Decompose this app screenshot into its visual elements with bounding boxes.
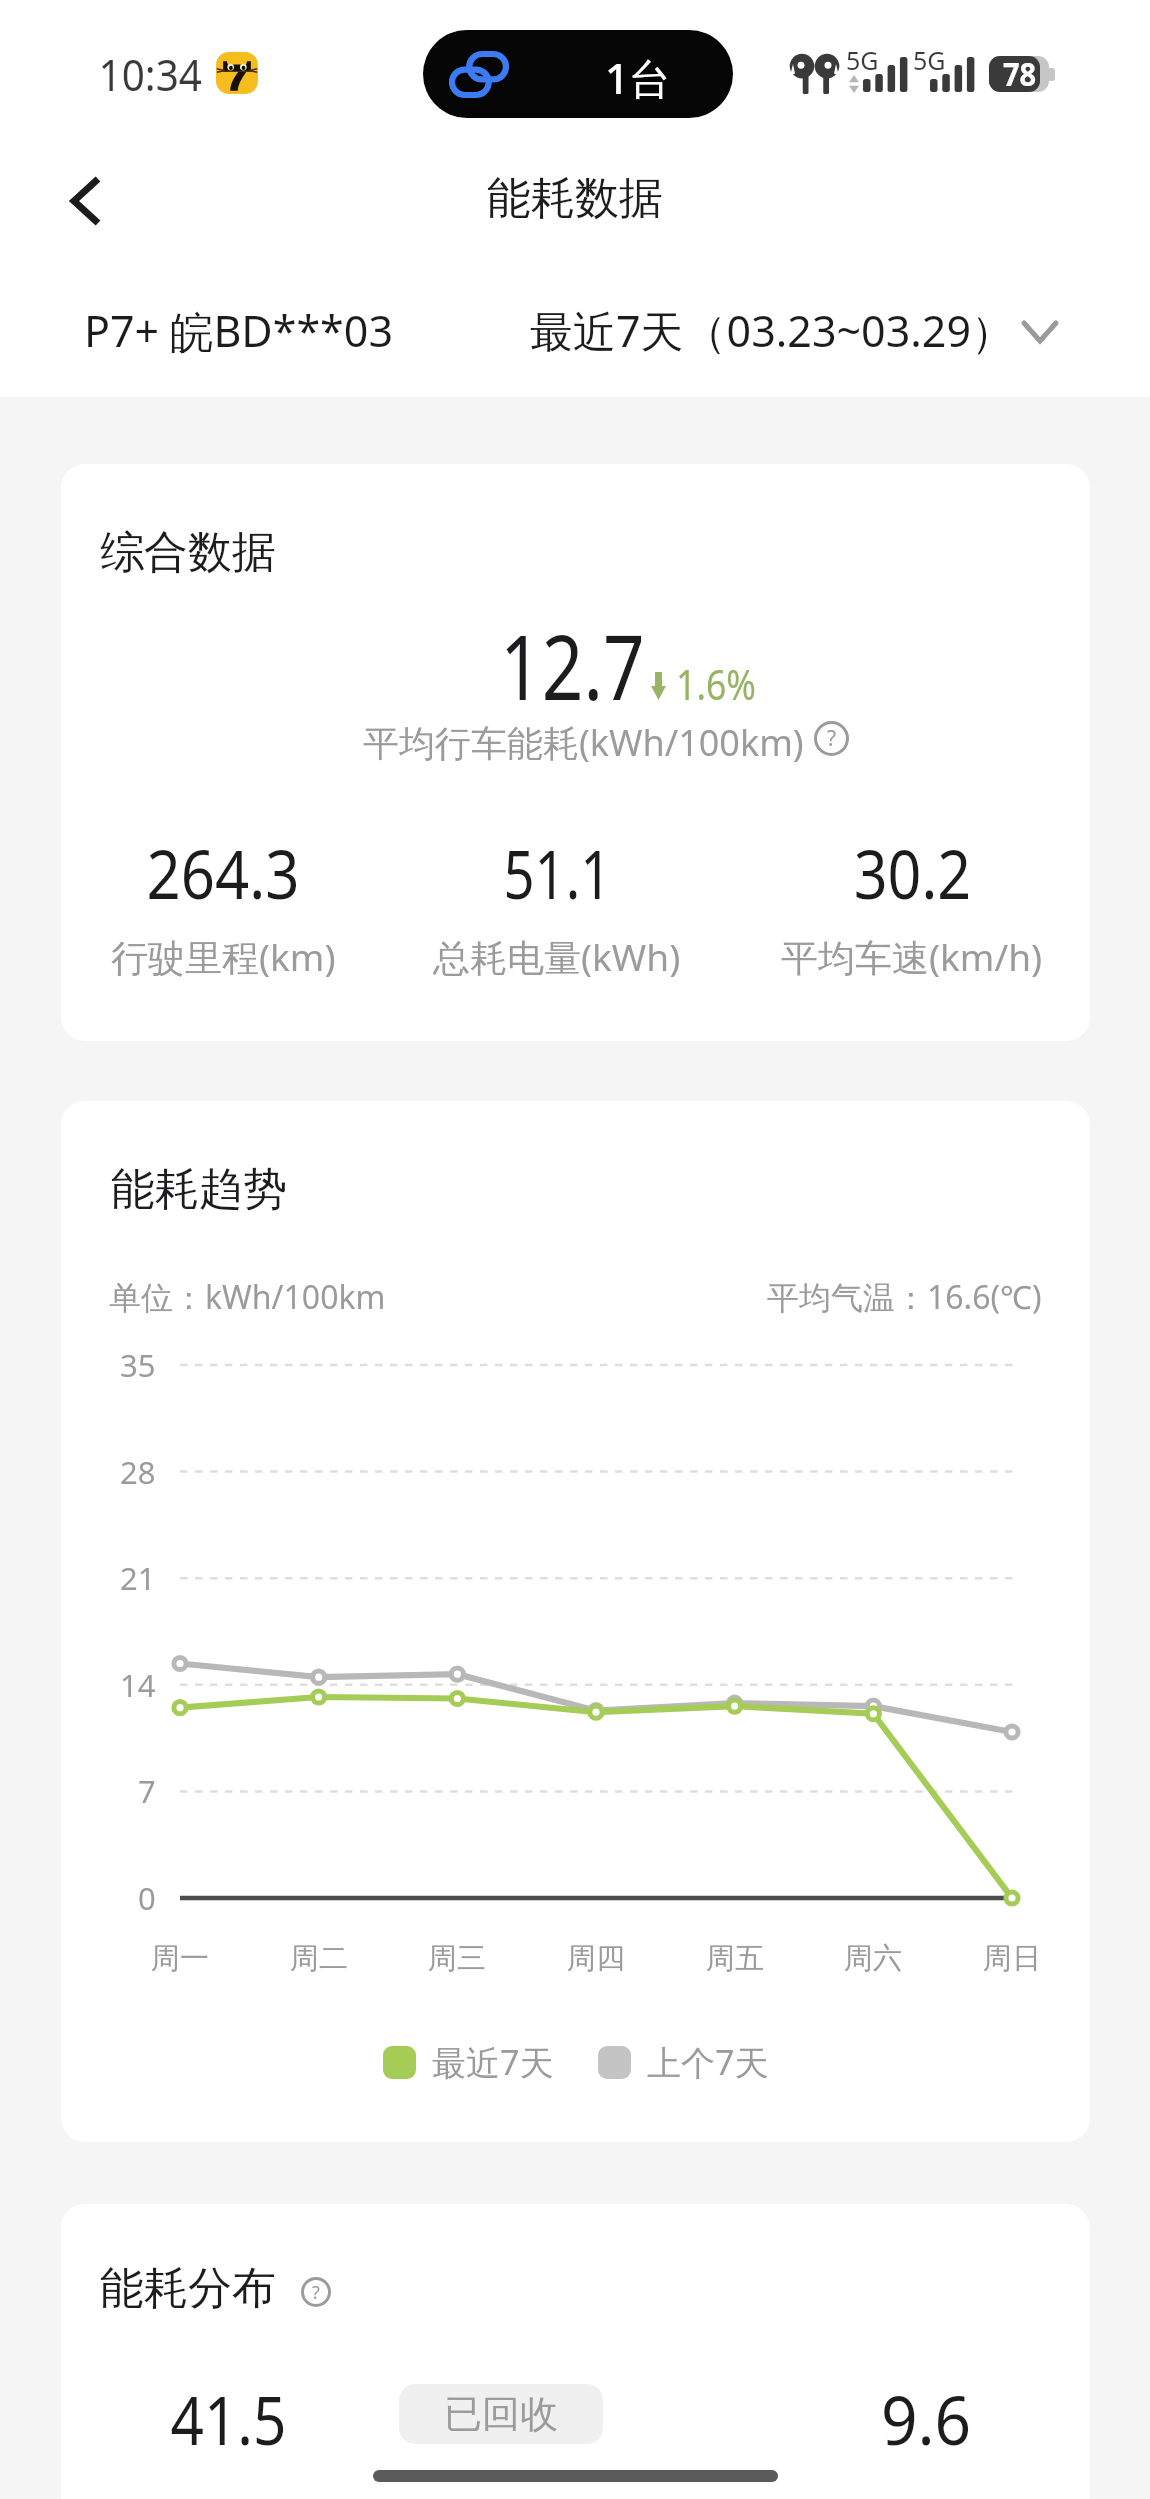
staticText: ? [827, 724, 837, 753]
staticText: 5G [846, 43, 879, 77]
staticText: ? [312, 2280, 320, 2305]
staticText: 综合数据 [100, 525, 276, 580]
staticText: 1台 [605, 49, 672, 106]
staticText: 平均行车能耗(kWh/100km) [363, 718, 804, 767]
staticText: 78 [1003, 51, 1036, 96]
staticText: 能耗分布 [100, 2261, 276, 2316]
staticText: 1.6% [676, 656, 756, 712]
staticText: 平均车速(km/h) [781, 931, 1043, 982]
staticText: 周一 [151, 1940, 209, 1977]
staticText: 周五 [706, 1940, 764, 1977]
staticText: 平均气温：16.6(℃) [767, 1275, 1042, 1319]
staticText: 5G [913, 43, 946, 77]
staticText: 28 [120, 1451, 156, 1493]
staticText: 7 [138, 1770, 156, 1812]
button[interactable]: Change date range [1000, 292, 1080, 372]
staticText: 周二 [290, 1940, 348, 1977]
staticText: 12.7 [500, 604, 645, 727]
staticText: 41.5 [170, 2372, 286, 2465]
staticText: 14 [120, 1664, 156, 1706]
staticText: 已回收 [444, 2390, 558, 2438]
staticText: 264.3 [146, 826, 299, 919]
staticText: 51.1 [503, 826, 611, 919]
staticText: 30.2 [854, 826, 971, 919]
staticText: 单位：kWh/100km [109, 1275, 386, 1319]
button[interactable]: Back [40, 155, 132, 247]
staticText: 21 [120, 1557, 156, 1599]
staticText: 周四 [567, 1940, 625, 1977]
staticText: 10:34 [98, 44, 202, 104]
staticText: 0 [138, 1877, 156, 1919]
staticText: 能耗趋势 [111, 1162, 287, 1217]
staticText: 能耗数据 [487, 171, 663, 226]
staticText: 周日 [983, 1940, 1041, 1977]
staticText: 最近7天 [432, 2039, 554, 2085]
staticText: 周三 [428, 1940, 486, 1977]
staticText: 周六 [844, 1940, 902, 1977]
staticText: 行驶里程(km) [111, 931, 336, 982]
staticText: 最近7天（03.23~03.29） [530, 301, 1015, 360]
staticText: 总耗电量(kWh) [433, 931, 681, 982]
staticText: 9.6 [881, 2372, 972, 2465]
staticText: 上个7天 [647, 2039, 769, 2085]
staticText: P7+ 皖BD***03 [84, 301, 393, 360]
staticText: 35 [120, 1344, 156, 1386]
